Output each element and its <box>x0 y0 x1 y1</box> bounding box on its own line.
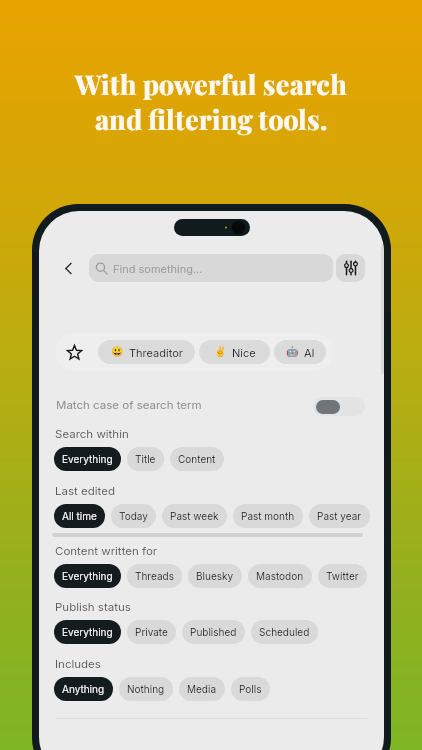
staticText: Twitter <box>326 570 359 582</box>
staticText: Everything <box>62 453 113 465</box>
staticText: Scheduled <box>259 626 310 638</box>
button[interactable]: Title <box>127 447 164 471</box>
button[interactable]: Scheduled <box>251 620 318 644</box>
button[interactable]: ✌️ <box>199 340 270 364</box>
staticText: Match case of search term <box>56 398 202 412</box>
button[interactable]: Everything <box>54 620 121 644</box>
staticText: Content <box>178 453 216 465</box>
button[interactable]: 😃 <box>98 340 195 364</box>
button[interactable]: All time <box>54 504 105 528</box>
staticText: Everything <box>62 570 113 582</box>
staticText: Nice <box>232 346 256 359</box>
staticText: Last edited <box>55 484 115 498</box>
button[interactable]: Threads <box>127 564 182 588</box>
button[interactable] <box>313 397 365 416</box>
button[interactable]: Bluesky <box>188 564 242 588</box>
staticText: Search within <box>55 427 129 441</box>
button[interactable]: Back <box>57 257 79 279</box>
button[interactable]: Saved searches <box>61 339 87 365</box>
staticText: Publish status <box>55 600 131 614</box>
button[interactable]: Search filters <box>336 254 365 282</box>
staticText: Today <box>119 510 148 522</box>
staticText: Threads <box>135 570 174 582</box>
staticText: All time <box>62 510 97 522</box>
staticText: Past week <box>170 510 219 522</box>
button[interactable]: Content <box>170 447 224 471</box>
button[interactable]: Mastodon <box>248 564 312 588</box>
staticText: Past month <box>241 510 295 522</box>
staticText: Everything <box>62 626 113 638</box>
staticText: Published <box>190 626 237 638</box>
staticText: Media <box>187 683 217 695</box>
staticText: Title <box>135 453 156 465</box>
staticText: Includes <box>55 657 101 671</box>
staticText: Threaditor <box>129 346 183 359</box>
staticText: ✌️ <box>214 346 227 358</box>
button[interactable]: Private <box>127 620 176 644</box>
button[interactable]: Twitter <box>318 564 367 588</box>
button[interactable]: Published <box>182 620 245 644</box>
staticText: Content written for <box>55 544 158 558</box>
button[interactable]: Polls <box>231 677 270 701</box>
staticText: Anything <box>62 683 105 695</box>
button[interactable]: Today <box>111 504 156 528</box>
button[interactable]: Everything <box>54 564 121 588</box>
button[interactable]: Past month <box>233 504 303 528</box>
staticText: 🤖 <box>286 346 299 358</box>
staticText: Polls <box>239 683 262 695</box>
staticText: Bluesky <box>196 570 234 582</box>
staticText: AI <box>304 346 315 359</box>
button[interactable]: 🤖 <box>274 340 326 364</box>
staticText: Nothing <box>127 683 165 695</box>
button[interactable]: Everything <box>54 447 121 471</box>
staticText: 😃 <box>111 346 124 358</box>
button[interactable]: Anything <box>54 677 113 701</box>
staticText: Find something... <box>113 262 203 275</box>
button[interactable]: Media <box>179 677 225 701</box>
button[interactable]: Past year <box>309 504 370 528</box>
button[interactable]: Past week <box>162 504 227 528</box>
button[interactable]: Nothing <box>119 677 173 701</box>
button[interactable]: Find something... <box>89 254 333 282</box>
staticText: Past year <box>317 510 362 522</box>
staticText: Mastodon <box>256 570 304 582</box>
staticText: Private <box>135 626 168 638</box>
